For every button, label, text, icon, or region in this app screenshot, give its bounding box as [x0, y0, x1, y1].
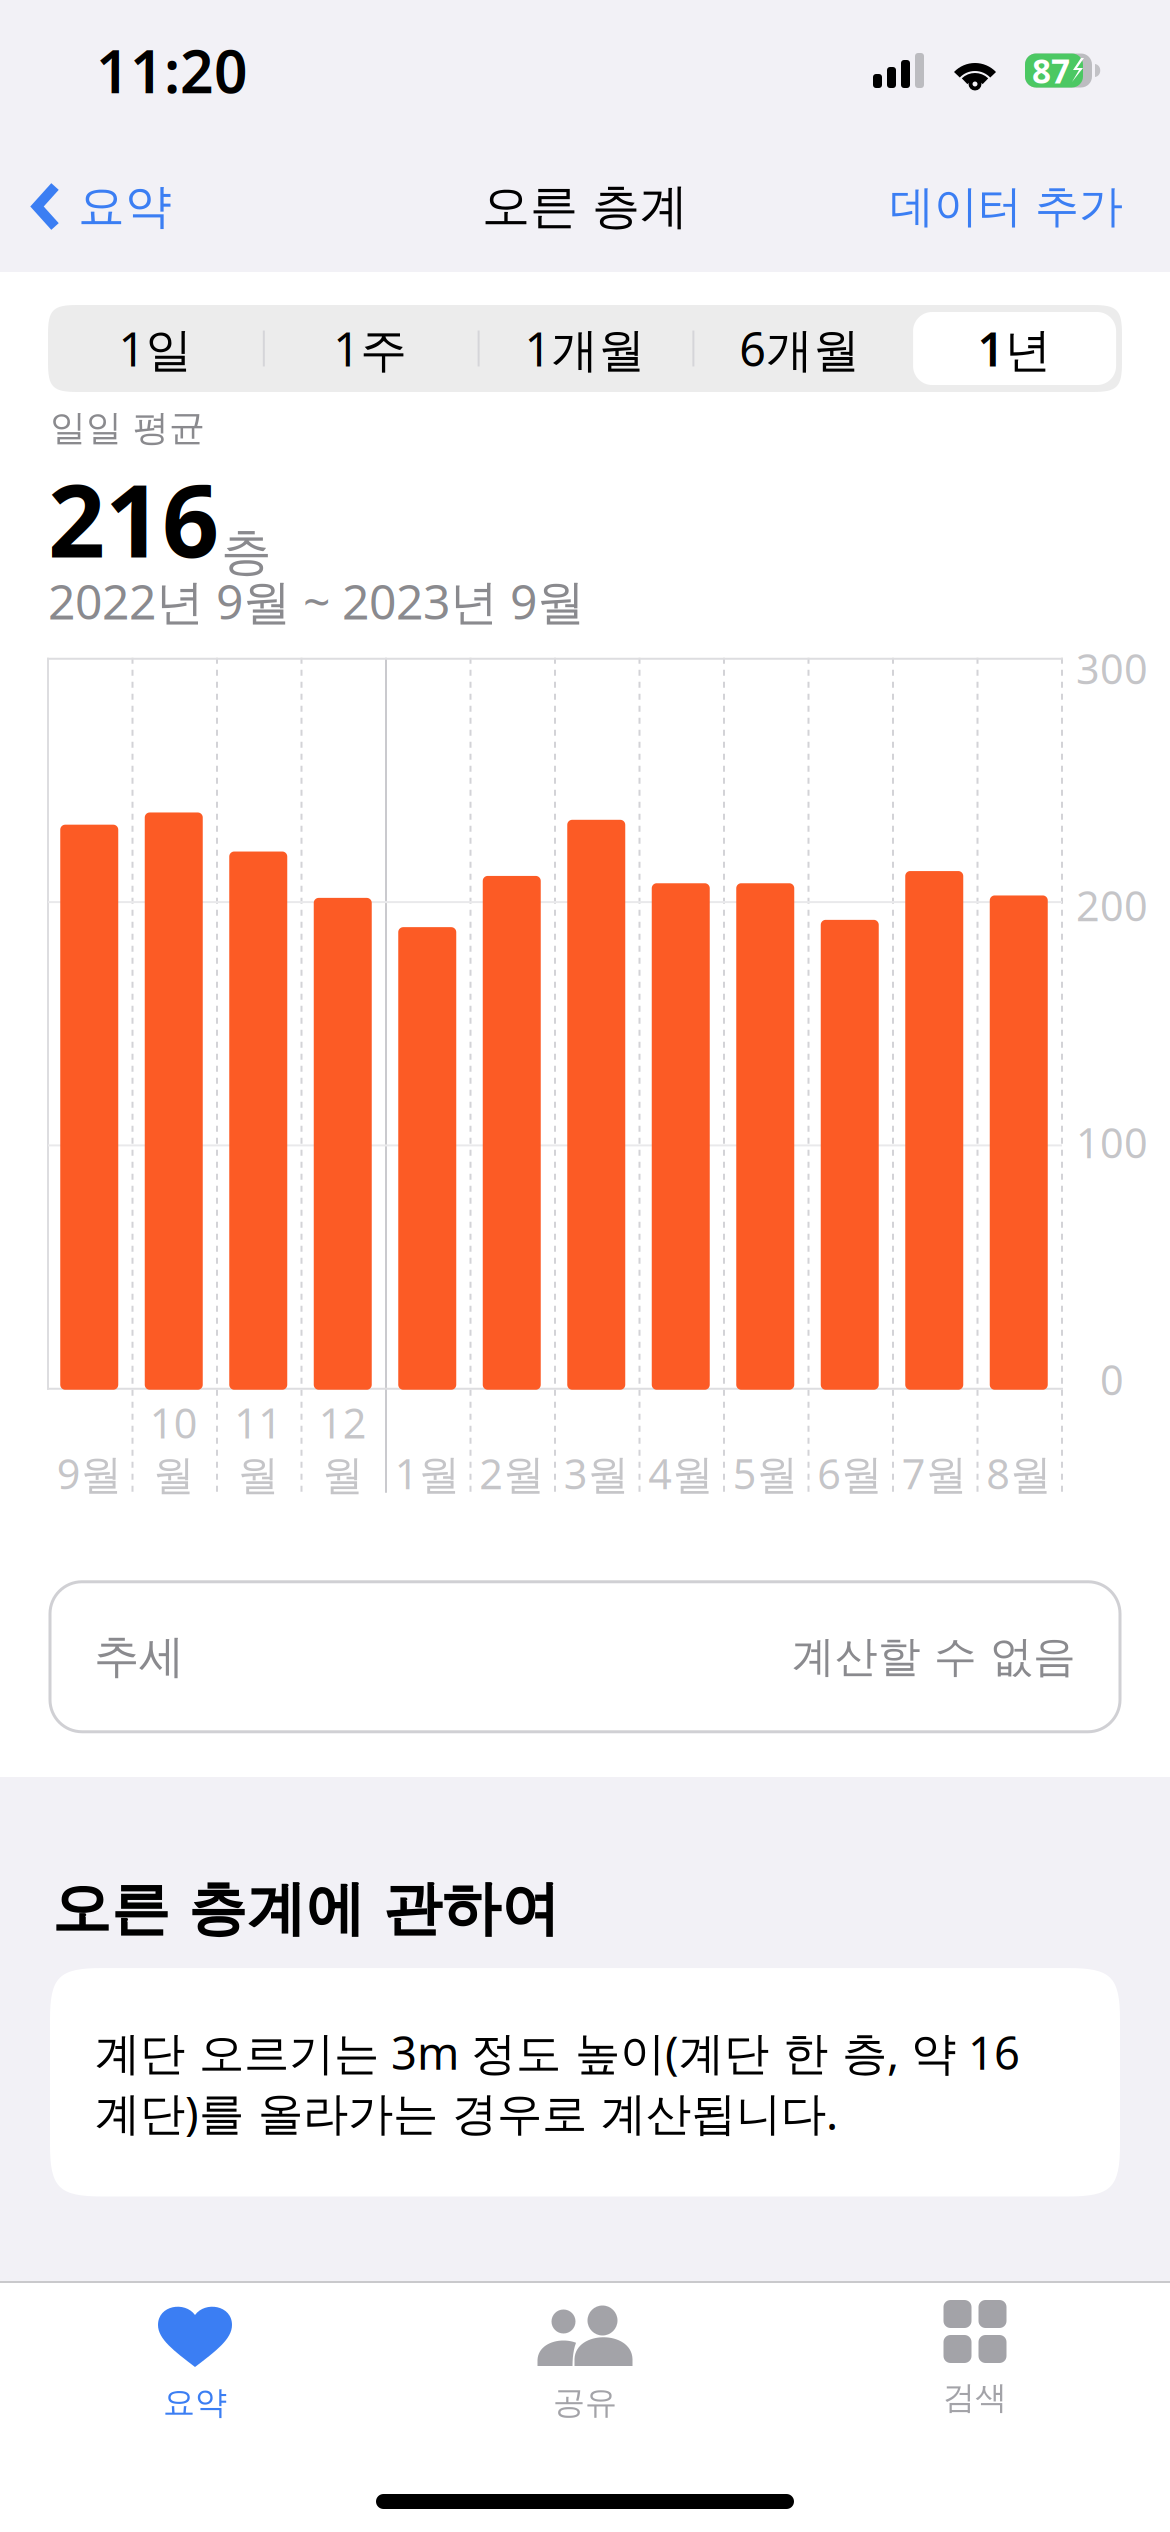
button[interactable]: 6개월 — [692, 305, 907, 392]
staticText: 87 — [1032, 48, 1070, 93]
staticText: 9월 — [57, 1446, 122, 1501]
staticText: 월 — [322, 1450, 363, 1501]
staticText: 1개월 — [524, 317, 645, 379]
staticText: 2월 — [479, 1446, 544, 1501]
staticText: 1월 — [395, 1446, 460, 1501]
staticText: 8월 — [986, 1446, 1051, 1501]
staticText: 3월 — [564, 1446, 629, 1501]
button[interactable]: 검색 — [780, 2283, 1170, 2448]
staticText: 요약 — [163, 2383, 227, 2422]
button[interactable]: 1개월 — [478, 305, 692, 392]
button[interactable]: 1일 — [48, 305, 263, 392]
button[interactable]: 데이터 추가 — [890, 159, 1170, 253]
button[interactable]: 1주 — [263, 305, 478, 392]
staticText: 7월 — [902, 1446, 967, 1501]
staticText: 계단 오르기는 3m 정도 높이(계단 한 층, 약 16 계단)를 올라가는 … — [95, 2022, 1020, 2142]
staticText: 월 — [238, 1450, 279, 1501]
staticText: 오른 층계 — [482, 177, 688, 236]
staticText: 216 — [48, 452, 219, 585]
staticText: 층 — [221, 521, 272, 583]
staticText: 추세 — [94, 1629, 184, 1685]
staticText: 300 — [1076, 641, 1148, 696]
staticText: 계산할 수 없음 — [792, 1631, 1076, 1683]
button[interactable]: 요약 — [0, 2283, 390, 2448]
staticText: 공유 — [553, 2383, 617, 2422]
staticText: 1년 — [978, 317, 1052, 379]
staticText: 0 — [1100, 1352, 1124, 1407]
button[interactable]: 1년 — [907, 305, 1122, 392]
staticText: 100 — [1076, 1115, 1148, 1170]
staticText: 검색 — [943, 2378, 1007, 2417]
staticText: 오른 층계에 관하여 — [52, 1873, 560, 1945]
button[interactable]: 요약 — [0, 158, 172, 255]
staticText: 데이터 추가 — [890, 179, 1123, 233]
staticText: 11 — [234, 1395, 282, 1450]
staticText: 6월 — [817, 1446, 882, 1501]
staticText: 요약 — [78, 178, 172, 235]
staticText: 일일 평균 — [50, 406, 205, 450]
staticText: 1일 — [118, 317, 192, 379]
staticText: 12 — [319, 1395, 367, 1450]
staticText: 2022년 9월 ~ 2023년 9월 — [48, 569, 585, 633]
staticText: 6개월 — [739, 317, 860, 379]
staticText: 5월 — [733, 1446, 798, 1501]
staticText: 1주 — [333, 317, 407, 379]
staticText: 4월 — [648, 1446, 713, 1501]
staticText: 월 — [153, 1450, 194, 1501]
button[interactable]: 공유 — [390, 2283, 780, 2448]
staticText: 10 — [150, 1395, 198, 1450]
staticText: 11:20 — [96, 31, 248, 109]
staticText: 200 — [1076, 878, 1148, 933]
